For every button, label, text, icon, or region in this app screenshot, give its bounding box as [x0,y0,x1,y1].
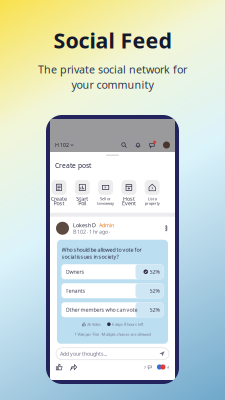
staticText: 1 Vote per Flat · Multiple choices are a… [74,332,150,337]
button[interactable]: H 102 [55,141,74,149]
staticText: Poll [78,200,86,207]
staticText: Who should be allowed to vote for [61,246,141,253]
staticText: 52% [149,287,159,294]
staticText: Start [76,195,88,202]
button[interactable]: Start [71,180,94,206]
staticText: Host [123,195,135,202]
staticText: 6 days 8 hours left [112,322,143,327]
button[interactable]: Other members who can vote [61,302,163,317]
button[interactable]: Search [121,142,127,148]
staticText: B 102 · 1 hr ago · [73,228,110,235]
staticText: property [145,201,160,206]
staticText: Event [122,200,136,207]
button[interactable]: Profile [163,141,170,148]
button[interactable]: Share [70,364,77,370]
staticText: 52% [149,306,159,313]
staticText: Add your thoughts... [60,350,107,357]
staticText: Create [51,195,67,202]
staticText: Post [53,200,64,207]
staticText: H 102 [55,141,69,149]
staticText: 52% [149,268,159,275]
staticText: your community [71,77,153,92]
button[interactable]: Owners [61,264,163,279]
button[interactable]: Sell or [94,180,117,206]
staticText: Sell or [100,196,111,201]
staticText: social issues in society? [61,253,118,260]
staticText: List a [148,196,157,201]
button[interactable]: Notifications [135,142,141,148]
button[interactable]: Like [56,364,62,370]
staticText: Create post [55,161,91,170]
staticText: 26 Votes [87,322,101,327]
staticText: 9 [143,364,145,370]
staticText: Tenants [65,287,85,294]
staticText: Giveaway [97,201,114,206]
staticText: Other members who can vote [65,306,137,313]
staticText: 4 [167,364,169,370]
staticText: Lokesh D [73,222,96,229]
button[interactable]: List a [141,180,164,206]
button[interactable]: Tenants [61,283,163,298]
button[interactable]: Messages [149,142,155,148]
staticText: Owners [65,268,84,275]
staticText: Admin [99,222,114,229]
button[interactable]: Host [117,180,140,206]
button[interactable]: Create [47,180,70,206]
staticText: The private social network for [38,62,187,76]
button[interactable]: Send comment [159,351,165,357]
button[interactable]: More options [163,225,169,231]
staticText: Social Feed [53,26,171,54]
